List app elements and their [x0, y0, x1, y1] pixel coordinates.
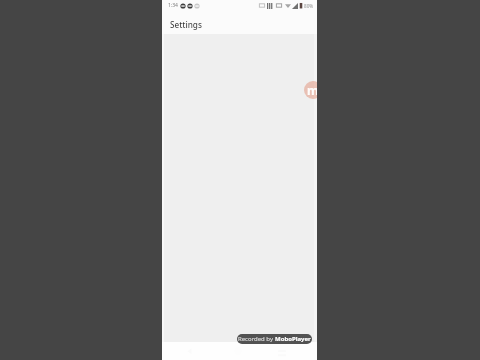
button[interactable]: Screen recorder: [304, 81, 317, 99]
staticText: 1:34: [168, 2, 178, 9]
staticText: Recorded by: [238, 335, 273, 343]
staticText: Settings: [170, 19, 202, 30]
staticText: 80%: [304, 3, 314, 9]
staticText: MoboPlayer: [275, 335, 311, 343]
staticText: m: [307, 82, 317, 98]
